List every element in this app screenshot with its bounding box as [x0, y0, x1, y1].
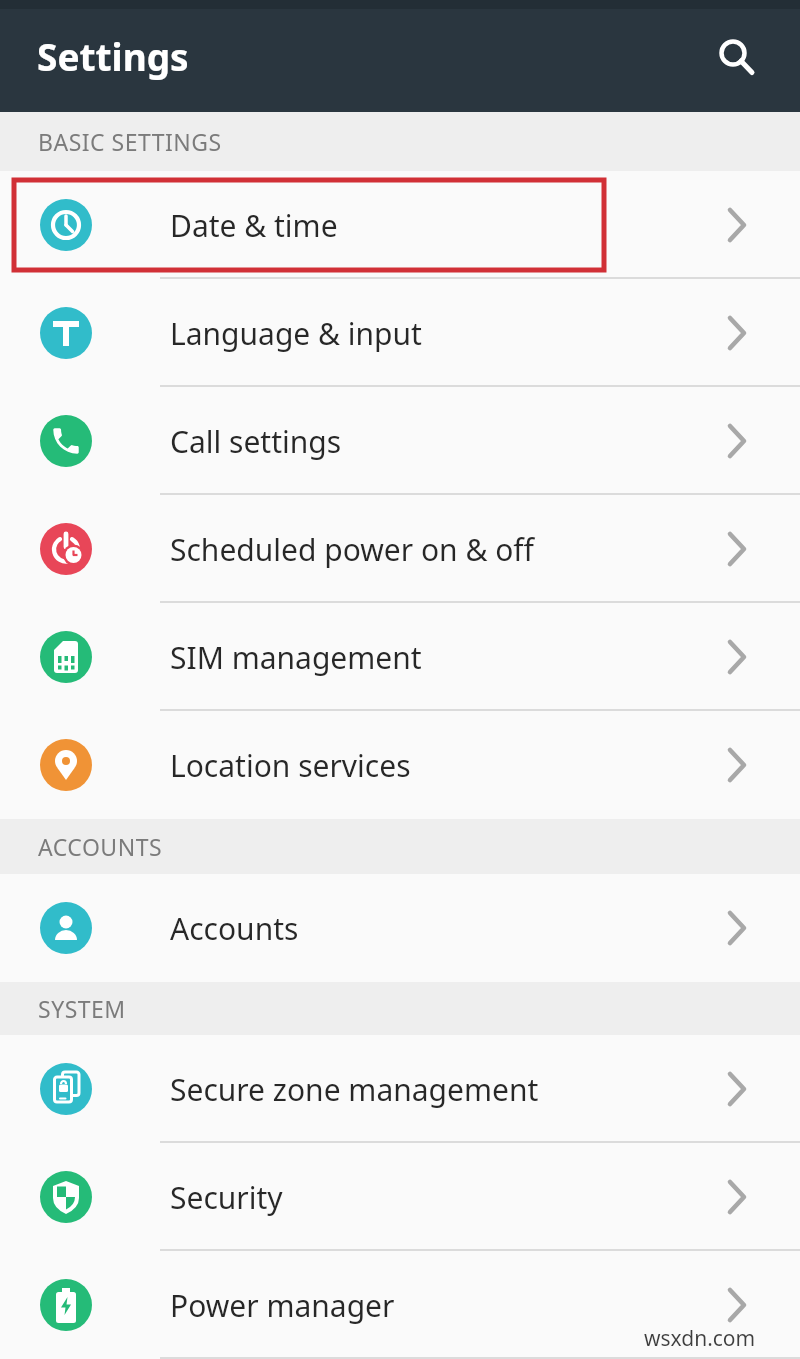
staticText: Language & input — [170, 313, 422, 354]
button[interactable]: Security — [0, 1143, 800, 1251]
staticText: Security — [170, 1177, 283, 1218]
staticText: Power manager — [170, 1285, 395, 1326]
staticText: Call settings — [170, 421, 342, 462]
staticText: wsxdn.com — [644, 1324, 756, 1353]
staticText: Settings — [37, 31, 189, 81]
button[interactable]: Date & time — [0, 171, 800, 279]
staticText: Secure zone management — [170, 1069, 539, 1110]
button[interactable]: SIM management — [0, 603, 800, 711]
staticText: Accounts — [170, 908, 299, 949]
staticText: Location services — [170, 745, 411, 786]
button[interactable]: Call settings — [0, 387, 800, 495]
button[interactable]: Scheduled power on & off — [0, 495, 800, 603]
button[interactable]: Language & input — [0, 279, 800, 387]
staticText: Date & time — [170, 205, 338, 246]
staticText: BASIC SETTINGS — [38, 126, 222, 157]
button[interactable]: Accounts — [0, 874, 800, 982]
staticText: ACCOUNTS — [38, 831, 163, 862]
staticText: SIM management — [170, 637, 422, 678]
button[interactable] — [718, 38, 754, 74]
staticText: Scheduled power on & off — [170, 529, 534, 570]
staticText: SYSTEM — [38, 993, 126, 1024]
button[interactable]: Secure zone management — [0, 1035, 800, 1143]
button[interactable]: Power manager — [0, 1251, 800, 1359]
button[interactable]: Location services — [0, 711, 800, 819]
